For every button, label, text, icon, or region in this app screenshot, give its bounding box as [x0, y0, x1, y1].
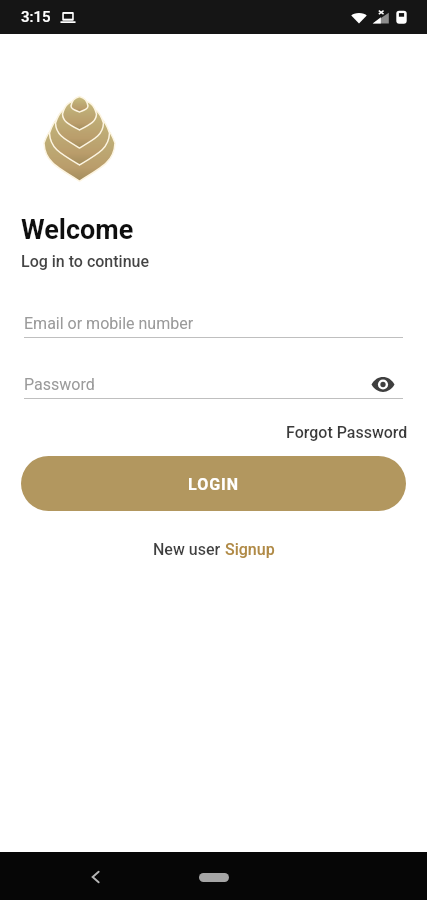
staticText: Welcome	[21, 214, 134, 246]
staticText: 3:15	[21, 8, 51, 26]
staticText: New user	[153, 540, 225, 559]
button[interactable]: Show password	[367, 370, 399, 398]
staticText: Password	[24, 375, 95, 394]
button[interactable]: Home	[199, 873, 229, 882]
button[interactable]: Back	[79, 860, 112, 893]
staticText: LOGIN	[188, 475, 240, 494]
button[interactable]: Forgot Password	[286, 421, 427, 444]
staticText: Signup	[225, 540, 275, 559]
staticText: Log in to continue	[21, 252, 150, 271]
button[interactable]: New user	[153, 536, 275, 563]
button[interactable]: LOGIN	[21, 456, 406, 511]
staticText: Forgot Password	[286, 423, 408, 442]
staticText: Email or mobile number	[24, 314, 194, 333]
